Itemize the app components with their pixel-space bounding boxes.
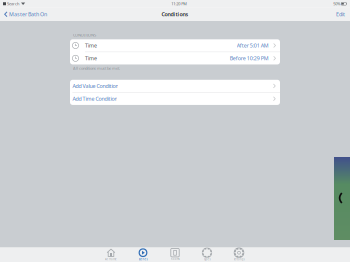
staticText: All conditions must be met. [73, 66, 120, 71]
button[interactable]: Add Value Condition [70, 80, 280, 92]
staticText: Add Time Condition [72, 95, 117, 102]
staticText: Time [85, 55, 97, 62]
staticText: After 5:01 AM [237, 42, 269, 49]
button[interactable]: Time [70, 39, 280, 52]
staticText: Search [7, 1, 19, 6]
staticText: CONDITIONS [73, 32, 96, 38]
button[interactable]: Add Time Condition [70, 93, 280, 105]
staticText: Types [203, 257, 210, 261]
staticText: Master Bath On [9, 11, 47, 18]
button[interactable]: Edit [331, 7, 350, 21]
staticText: Edit [336, 11, 345, 18]
staticText: Conditions [161, 11, 188, 18]
staticText: 50% [333, 1, 340, 6]
staticText: Rooms [170, 257, 179, 261]
staticText: Add Value Condition [72, 82, 118, 89]
button[interactable]: Types [194, 247, 220, 262]
button[interactable]: Time [70, 52, 280, 64]
button[interactable]: Master Bath On [0, 7, 51, 21]
staticText: Settings [233, 257, 244, 261]
staticText: Before 10:29 PM [230, 55, 269, 62]
staticText: Scenes [138, 257, 147, 261]
button[interactable]: Rooms [162, 247, 188, 262]
button[interactable]: At Home [98, 247, 124, 262]
button[interactable]: Settings [226, 247, 252, 262]
button[interactable]: Scenes [130, 247, 156, 262]
staticText: At Home [105, 257, 117, 261]
staticText: Time [85, 42, 97, 49]
staticText: 11:20 PM [171, 1, 187, 6]
